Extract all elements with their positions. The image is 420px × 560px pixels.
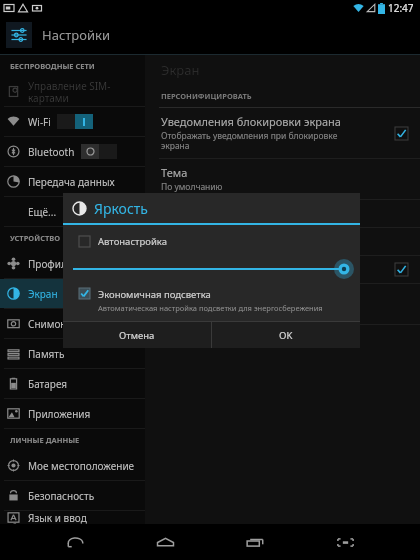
- button[interactable]: Обои: [145, 200, 420, 228]
- staticText: После 1 минута бездействия: [161, 306, 280, 318]
- staticText: ЛИЧНЫЕ ДАННЫЕ: [10, 435, 80, 445]
- staticText: Профили: [28, 257, 74, 271]
- button[interactable]: Спящий режим: [145, 284, 420, 325]
- button[interactable]: Wi-Fi: [0, 107, 145, 136]
- button[interactable]: [81, 144, 117, 159]
- button[interactable]: Home: [145, 524, 185, 560]
- other: Settings: [6, 22, 32, 48]
- button[interactable]: Язык и ввод: [0, 511, 145, 524]
- staticText: По умолчанию: [161, 181, 223, 193]
- staticText: OK: [279, 329, 293, 342]
- staticText: Управление SIM-картами: [28, 79, 145, 105]
- button[interactable]: Экран: [0, 279, 145, 308]
- staticText: УСТРОЙСТВО: [10, 233, 61, 243]
- button[interactable]: Безопасность: [0, 481, 145, 510]
- staticText: Приложения: [28, 407, 91, 421]
- staticText: БЕСПРОВОДНЫЕ СЕТИ: [10, 61, 95, 71]
- staticText: Отмена: [119, 329, 155, 342]
- button[interactable]: Автоповорот экрана: [145, 256, 420, 284]
- button[interactable]: Управление SIM-картами: [0, 77, 145, 106]
- staticText: ПЕРСОНИФИЦИРОВАТЬ: [161, 91, 252, 101]
- button[interactable]: Back: [55, 524, 95, 560]
- staticText: Настройки: [42, 26, 111, 44]
- staticText: Автоповорот экрана: [161, 262, 270, 277]
- button[interactable]: Снимок: [0, 309, 145, 338]
- button[interactable]: [395, 263, 408, 276]
- staticText: Тема: [161, 165, 188, 180]
- staticText: Отображать уведомления при блокировке эк…: [161, 130, 338, 152]
- button[interactable]: Мое местоположение: [0, 451, 145, 480]
- button[interactable]: Приложения: [0, 399, 145, 428]
- button[interactable]: Яркость: [145, 228, 420, 256]
- button[interactable]: [57, 114, 93, 129]
- staticText: Уведомления блокировки экрана: [161, 114, 341, 129]
- button[interactable]: Bluetooth: [0, 137, 145, 166]
- staticText: Экономичная подсветка: [98, 288, 211, 301]
- staticText: Память: [28, 347, 65, 361]
- button[interactable]: Отмена: [63, 322, 211, 348]
- button[interactable]: Экономичная подсветка: [63, 284, 360, 321]
- staticText: Экран: [161, 61, 200, 79]
- button[interactable]: Ещё...: [0, 197, 145, 226]
- button[interactable]: Передача данных: [0, 167, 145, 196]
- staticText: Батарея: [28, 377, 68, 391]
- staticText: Яркость: [161, 234, 204, 249]
- button[interactable]: Screenshot: [325, 524, 365, 560]
- button[interactable]: Тема: [145, 159, 420, 200]
- button[interactable]: Профили: [0, 249, 145, 278]
- staticText: Bluetooth: [28, 145, 75, 159]
- staticText: Автонастройка: [98, 235, 167, 248]
- button[interactable]: Brightness slider: [63, 254, 360, 284]
- staticText: Экран: [28, 287, 58, 301]
- staticText: Передача данных: [28, 175, 115, 189]
- button[interactable]: Автонастройка: [63, 225, 360, 254]
- staticText: Ещё...: [28, 205, 57, 219]
- staticText: Язык и ввод: [28, 511, 87, 524]
- button[interactable]: Батарея: [0, 369, 145, 398]
- staticText: Снимок: [28, 317, 66, 331]
- staticText: Мое местоположение: [28, 459, 135, 473]
- button[interactable]: OK: [212, 322, 360, 348]
- button[interactable]: Уведомления блокировки экрана: [145, 108, 420, 159]
- button[interactable]: [395, 127, 408, 140]
- staticText: 12:47: [388, 1, 414, 15]
- staticText: Безопасность: [28, 489, 95, 503]
- button[interactable]: Recents: [235, 524, 275, 560]
- staticText: Автоматическая настройка подсветки для э…: [98, 303, 323, 313]
- button[interactable]: Память: [0, 339, 145, 368]
- staticText: Wi-Fi: [28, 115, 51, 129]
- staticText: Яркость: [94, 199, 148, 218]
- button[interactable]: Settings: [0, 16, 420, 54]
- staticText: Спящий режим: [161, 290, 244, 305]
